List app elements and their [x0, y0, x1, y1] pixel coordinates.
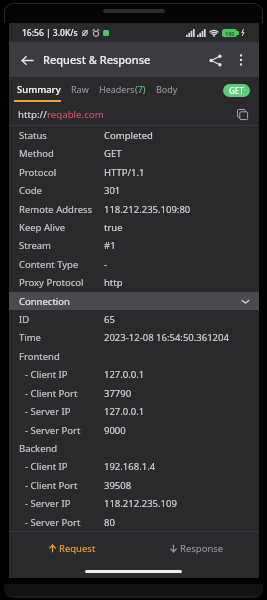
- staticText: 37790: [104, 387, 132, 400]
- button[interactable]: Summary: [12, 77, 66, 101]
- staticText: http: [104, 276, 123, 289]
- button[interactable]: Request: [9, 532, 134, 565]
- button[interactable]: Status: [9, 126, 259, 144]
- button[interactable]: Proxy Protocol: [9, 273, 259, 292]
- staticText: Headers: [99, 83, 135, 95]
- staticText: reqable.com: [47, 108, 104, 121]
- staticText: Keep Alive: [19, 221, 66, 234]
- staticText: ID: [19, 313, 30, 326]
- button[interactable]: - Server Port: [9, 513, 259, 531]
- staticText: 2023-12-08 16:54:50.361204: [104, 331, 229, 344]
- staticText: - Client IP: [25, 460, 68, 473]
- staticText: Status: [19, 129, 47, 142]
- staticText: 118.212.235.109: [104, 497, 177, 510]
- staticText: #1: [104, 239, 116, 252]
- button[interactable]: Remote Address: [9, 200, 259, 218]
- staticText: 39508: [104, 479, 132, 492]
- staticText: 192.168.1.4: [104, 460, 156, 473]
- staticText: Completed: [104, 129, 153, 142]
- button[interactable]: Back: [15, 48, 39, 72]
- button[interactable]: - Client IP: [9, 365, 259, 384]
- staticText: Proxy Protocol: [19, 276, 84, 289]
- staticText: true: [104, 221, 123, 234]
- button[interactable]: Time: [9, 328, 259, 347]
- button[interactable]: Content Type: [9, 255, 259, 273]
- staticText: - Server IP: [25, 497, 71, 510]
- staticText: - Server Port: [25, 424, 81, 437]
- button[interactable]: Code: [9, 181, 259, 200]
- button[interactable]: Headers: [94, 77, 151, 101]
- staticText: 127.0.0.1: [104, 405, 145, 418]
- staticText: Stream: [19, 239, 51, 252]
- staticText: 80: [104, 516, 115, 529]
- staticText: 301: [104, 184, 121, 197]
- staticText: Request: [59, 542, 96, 555]
- staticText: Protocol: [19, 166, 57, 179]
- button[interactable]: Protocol: [9, 163, 259, 181]
- staticText: HTTP/1.1: [104, 166, 145, 179]
- button[interactable]: - Server Port: [9, 421, 259, 439]
- staticText: - Client IP: [25, 368, 68, 381]
- button[interactable]: - Client Port: [9, 384, 259, 402]
- staticText: 9000: [104, 424, 126, 437]
- button[interactable]: - Client IP: [9, 457, 259, 476]
- staticText: Frontend: [19, 350, 60, 363]
- staticText: Body: [156, 83, 178, 95]
- staticText: (7): [135, 83, 146, 95]
- staticText: - Client Port: [25, 479, 78, 492]
- staticText: 100: [225, 30, 235, 37]
- staticText: Code: [19, 184, 42, 197]
- staticText: Summary: [17, 83, 61, 96]
- staticText: Method: [19, 147, 54, 160]
- staticText: 118.212.235.109:80: [104, 203, 191, 216]
- staticText: Connection: [19, 295, 70, 308]
- staticText: GET: [229, 85, 244, 96]
- button[interactable]: Connection: [9, 292, 259, 310]
- button[interactable]: ID: [9, 310, 259, 328]
- button[interactable]: Body: [151, 77, 183, 101]
- button[interactable]: More options: [229, 48, 253, 72]
- staticText: -: [104, 258, 108, 271]
- staticText: - Server IP: [25, 405, 71, 418]
- staticText: http://: [18, 108, 47, 121]
- button[interactable]: - Server IP: [9, 494, 259, 513]
- staticText: 16:56 | 3.0K/s: [22, 27, 78, 39]
- button[interactable]: Method: [9, 144, 259, 163]
- button[interactable]: GET: [223, 84, 250, 97]
- staticText: Request & Response: [43, 52, 151, 67]
- staticText: 65: [104, 313, 115, 326]
- button[interactable]: Share: [203, 48, 227, 72]
- staticText: 127.0.0.1: [104, 368, 145, 381]
- button[interactable]: Raw: [66, 77, 94, 101]
- staticText: GET: [104, 147, 122, 160]
- staticText: Raw: [71, 83, 89, 95]
- staticText: - Server Port: [25, 516, 81, 529]
- button[interactable]: Response: [134, 532, 259, 565]
- staticText: Remote Address: [19, 203, 93, 216]
- button[interactable]: - Client Port: [9, 476, 259, 494]
- button[interactable]: Copy URL: [233, 105, 251, 123]
- staticText: Backend: [19, 442, 58, 455]
- staticText: - Client Port: [25, 387, 78, 400]
- staticText: Time: [19, 331, 41, 344]
- button[interactable]: - Server IP: [9, 402, 259, 421]
- button[interactable]: Stream: [9, 236, 259, 255]
- button[interactable]: Keep Alive: [9, 218, 259, 236]
- staticText: Response: [180, 542, 224, 555]
- staticText: Content Type: [19, 258, 79, 271]
